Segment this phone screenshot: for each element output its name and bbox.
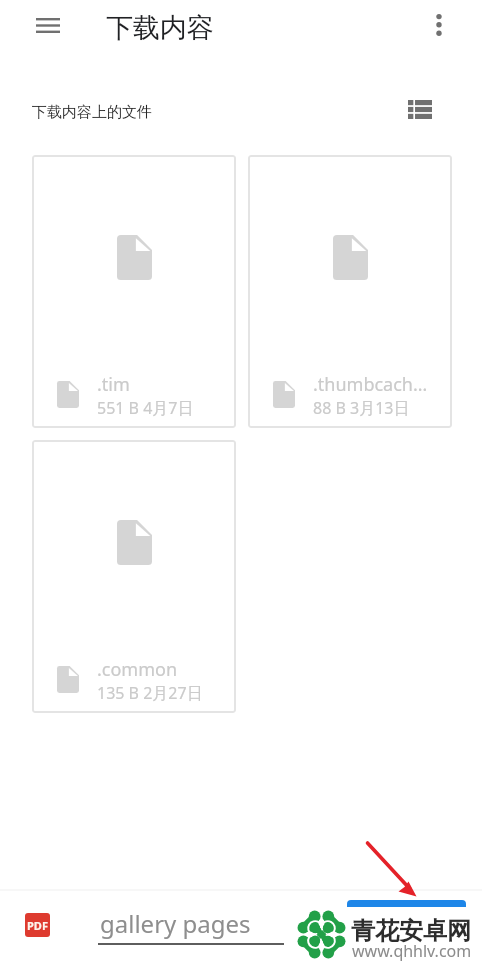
staticText: 保存 xyxy=(392,911,422,930)
staticText: .thumbcach… xyxy=(313,372,448,397)
staticText: 88 B 3月13日 xyxy=(313,397,410,419)
staticText: 青花安卓网 xyxy=(351,916,471,946)
button[interactable]: PDF xyxy=(25,913,50,937)
staticText: gallery pages xyxy=(100,907,251,940)
staticText: 下载内容 xyxy=(106,11,214,45)
staticText: PDF xyxy=(27,918,48,933)
staticText: 135 B 2月27日 xyxy=(97,682,203,704)
button[interactable]: More options xyxy=(427,7,451,43)
staticText: .tim xyxy=(97,372,232,397)
staticText: www.qhhlv.com xyxy=(352,940,472,962)
staticText: .common xyxy=(97,657,232,682)
button[interactable]: gallery pages xyxy=(98,908,284,948)
button[interactable]: 保存 xyxy=(347,900,466,940)
button[interactable]: Switch to list view xyxy=(400,91,440,127)
button[interactable]: .common xyxy=(32,440,236,713)
staticText: 551 B 4月7日 xyxy=(97,397,194,419)
staticText: 下载内容上的文件 xyxy=(32,103,152,122)
button[interactable]: .tim xyxy=(32,155,236,428)
button[interactable]: .thumbcach… xyxy=(248,155,452,428)
button[interactable]: Navigation menu xyxy=(36,18,60,33)
